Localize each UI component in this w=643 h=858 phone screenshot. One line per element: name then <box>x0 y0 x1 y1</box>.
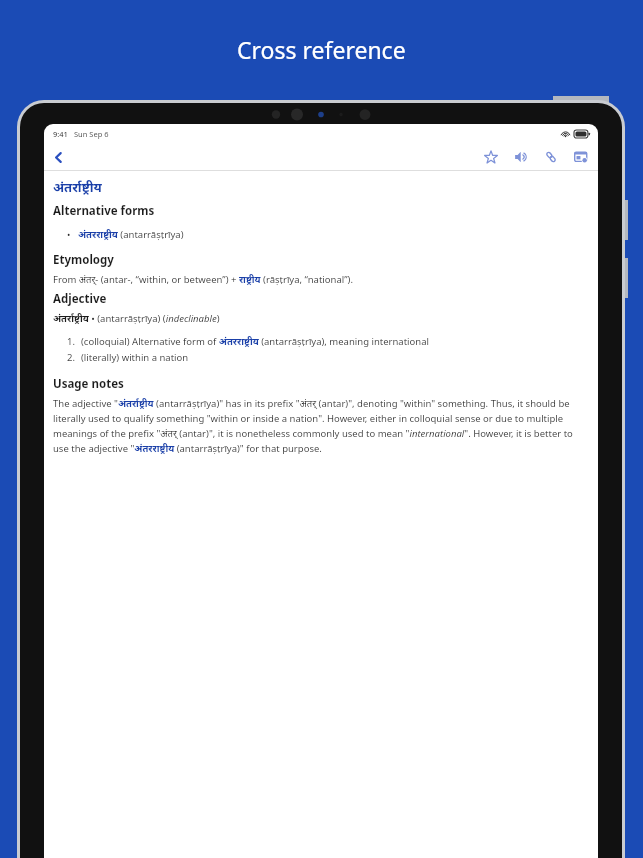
staticText: (literally) within a nation <box>81 351 189 364</box>
button[interactable]: Copy link <box>540 146 562 168</box>
staticText: Sun Sep 6 <box>74 129 109 139</box>
staticText: 1. <box>67 335 75 348</box>
staticText: Alternative forms <box>53 203 155 219</box>
staticText: (colloquial) Alternative form of अंतरराष… <box>81 335 429 348</box>
staticText: Cross reference <box>237 34 406 65</box>
staticText: अंतर्राष्ट्रीय • (antarrāṣṭrīya) (indecl… <box>53 312 220 325</box>
button[interactable]: History <box>570 146 592 168</box>
button[interactable]: Pronounce <box>510 146 532 168</box>
staticText: अंतरराष्ट्रीय (antarrāṣṭrīya) <box>78 228 184 241</box>
button[interactable]: Favorite <box>480 146 502 168</box>
staticText: Etymology <box>53 252 114 268</box>
staticText: Usage notes <box>53 376 124 392</box>
staticText: From अंतर्- (antar-, “within, or between… <box>53 273 353 286</box>
staticText: 9:41 <box>53 129 68 139</box>
button[interactable]: Back <box>47 146 69 168</box>
staticText: • <box>67 228 71 240</box>
staticText: Adjective <box>53 291 107 307</box>
staticText: अंतर्राष्ट्रीय <box>53 178 102 196</box>
staticText: The adjective "अंतर्राष्ट्रीय (antarrāṣṭ… <box>53 397 585 455</box>
staticText: 2. <box>67 351 75 364</box>
